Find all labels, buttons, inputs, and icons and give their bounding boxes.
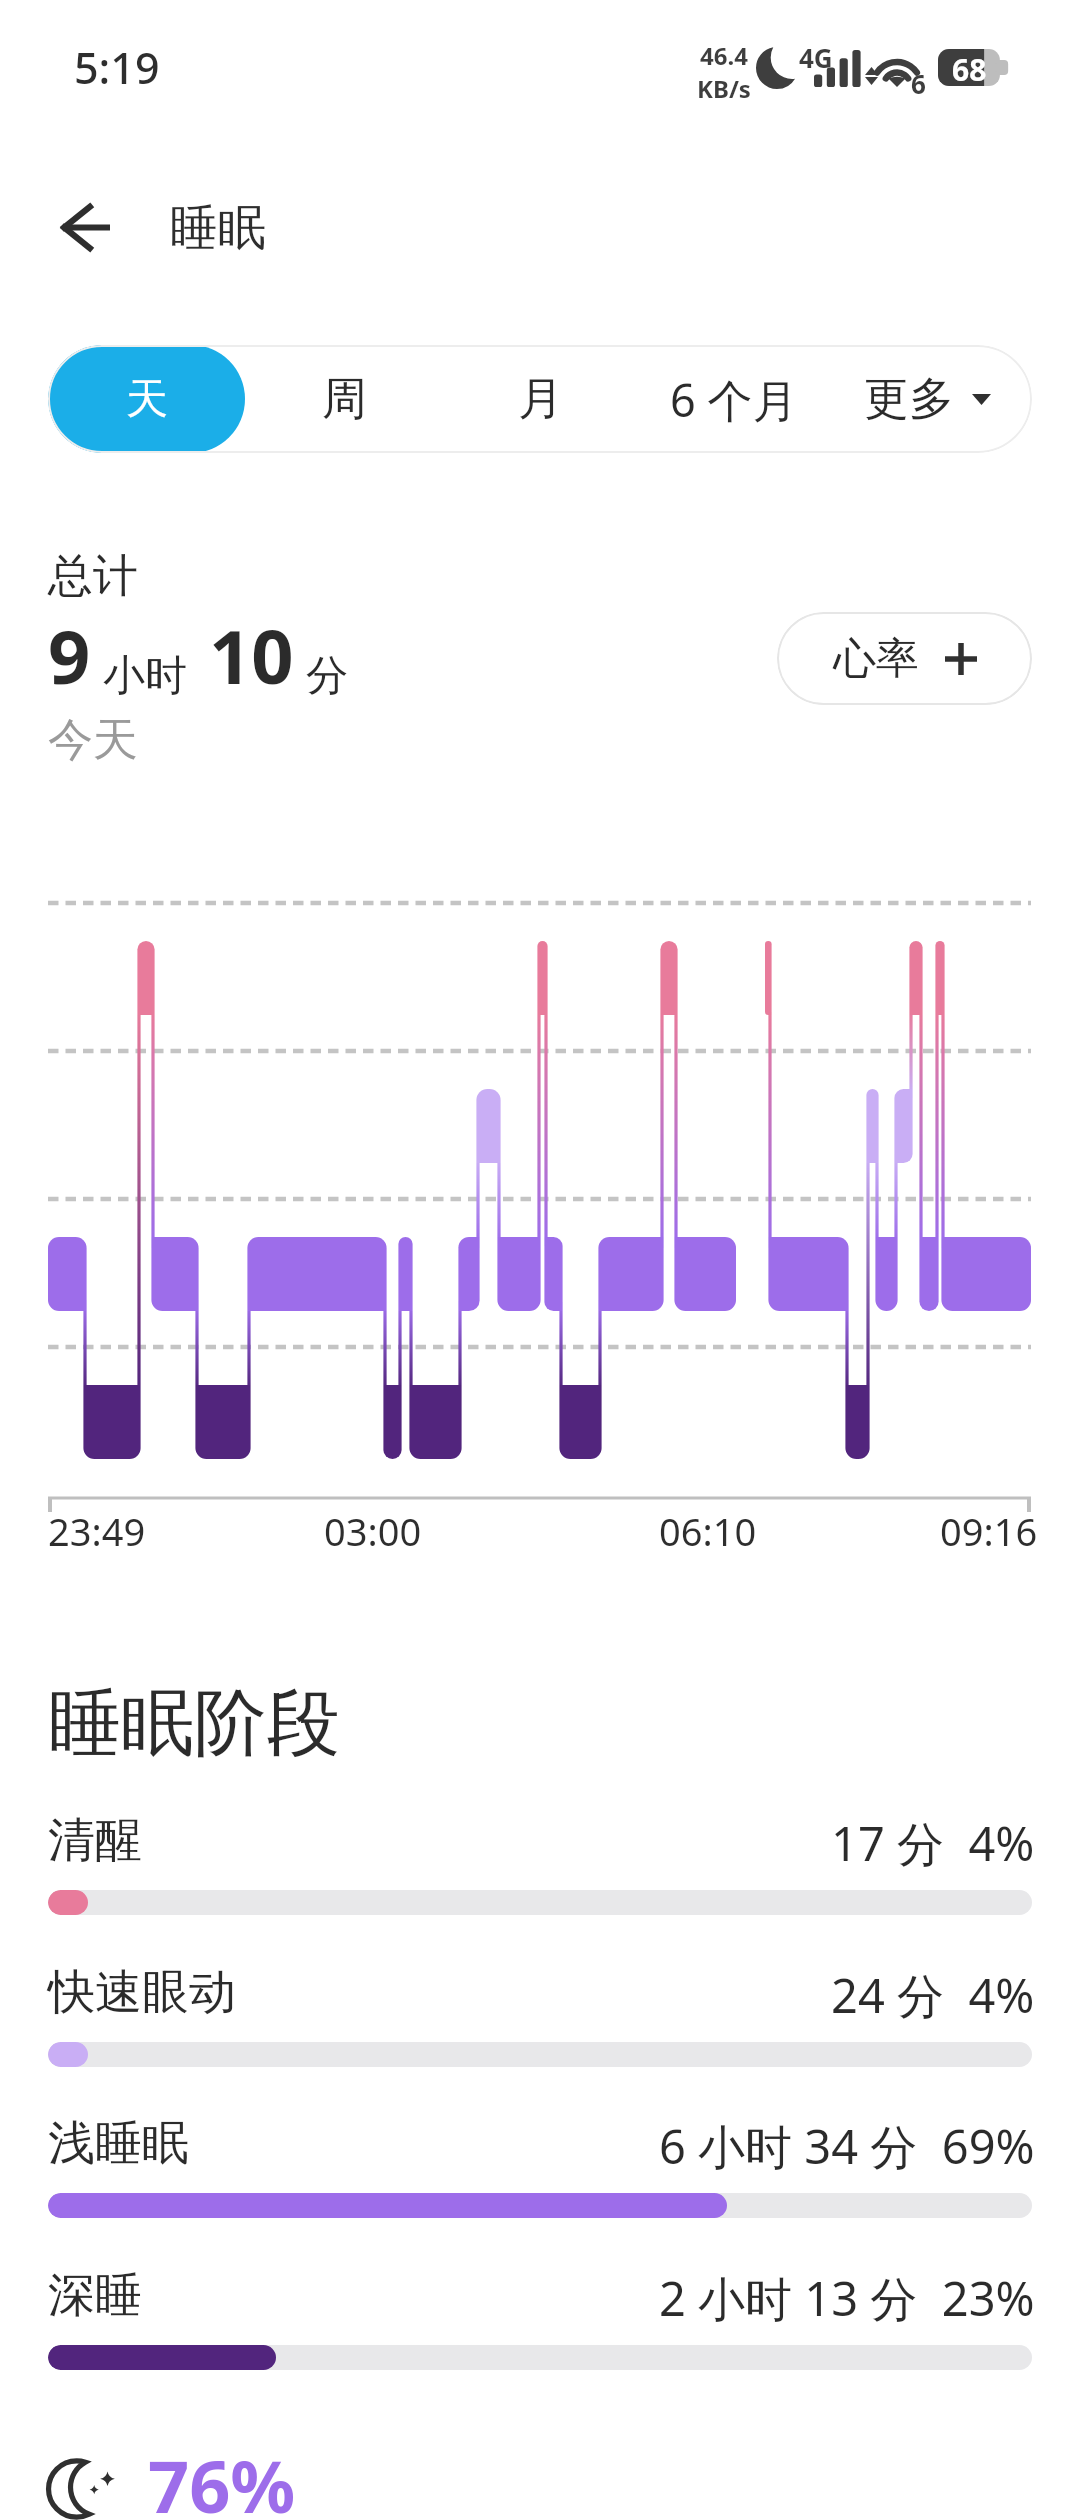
staticText: KB/s [697, 72, 751, 105]
staticText: 24 分 4% [831, 1963, 1035, 2027]
button[interactable]: 浅睡眠 [48, 2112, 1032, 2232]
staticText: 06:10 [659, 1505, 757, 1557]
staticText: 天 [126, 373, 168, 426]
button[interactable]: 清醒 [48, 1809, 1032, 1929]
staticText: 快速眼动 [48, 1963, 236, 2022]
staticText: 23:49 [48, 1505, 146, 1557]
staticText: 月 [518, 371, 563, 428]
staticText: 2 小时 13 分 23% [659, 2266, 1035, 2330]
staticText: 小时 [103, 650, 187, 703]
staticText: 深睡 [48, 2266, 142, 2325]
button[interactable]: 天 [48, 345, 245, 453]
staticText: 09:16 [940, 1505, 1038, 1557]
staticText: 68 [952, 49, 987, 86]
staticText: 9 [48, 605, 91, 706]
button[interactable]: 6 个月 [635, 345, 833, 453]
staticText: 周 [322, 371, 367, 428]
button[interactable]: 心率 [777, 612, 1032, 705]
staticText: 睡眠 [170, 198, 266, 258]
staticText: 6 个月 [670, 369, 798, 430]
button[interactable]: 月 [442, 345, 639, 453]
staticText: 分 [306, 650, 348, 703]
staticText: 今天 [48, 712, 138, 769]
staticText: 总计 [48, 548, 138, 605]
staticText: 5:19 [74, 38, 160, 97]
staticText: 03:00 [324, 1505, 422, 1557]
staticText: 清醒 [48, 1811, 142, 1870]
button[interactable]: 周 [246, 345, 443, 453]
button[interactable]: Back [22, 175, 150, 279]
staticText: 心率 [833, 632, 919, 686]
staticText: 4G [799, 40, 833, 75]
staticText: 17 分 4% [831, 1811, 1035, 1875]
staticText: 更多 [864, 371, 954, 428]
staticText: 76% [148, 2436, 296, 2520]
button[interactable]: 更多 [830, 345, 1024, 453]
staticText: 46.4 [700, 39, 748, 72]
button[interactable]: 深睡 [48, 2264, 1032, 2384]
staticText: 浅睡眠 [48, 2114, 189, 2173]
staticText: 6 [911, 66, 926, 101]
button[interactable]: 快速眼动 [48, 1961, 1032, 2081]
staticText: 10 [209, 605, 294, 706]
staticText: 睡眠阶段 [48, 1678, 340, 1770]
staticText: 6 小时 34 分 69% [659, 2114, 1035, 2178]
